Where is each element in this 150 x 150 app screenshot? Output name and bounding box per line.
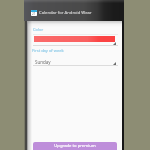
staticText: First day of week: [32, 48, 64, 53]
staticText: Sunday: [35, 59, 51, 65]
staticText: Upgrade to premium: [54, 143, 96, 149]
button[interactable]: Upgrade to premium: [33, 142, 117, 150]
staticText: Calendar for Android Wear: [39, 10, 92, 16]
button[interactable]: Color: [34, 36, 115, 42]
staticText: 21: [32, 12, 36, 16]
staticText: Color: [33, 27, 44, 32]
